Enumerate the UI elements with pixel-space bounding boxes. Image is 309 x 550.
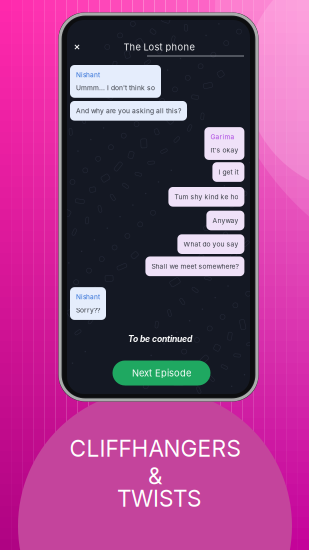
staticText: Nishant: [76, 71, 100, 79]
staticText: Garima: [210, 133, 234, 141]
staticText: CLIFFHANGERS: [69, 435, 240, 462]
staticText: Anyway: [212, 216, 238, 224]
staticText: I get it: [218, 168, 238, 176]
staticText: Ummm... I don't think so: [76, 84, 155, 92]
staticText: TWISTS: [117, 485, 201, 512]
staticText: And why are you asking all this?: [76, 107, 181, 115]
staticText: Shall we meet somewhere?: [151, 262, 238, 270]
button[interactable]: Close: [70, 40, 84, 54]
staticText: To be continued: [128, 334, 192, 344]
staticText: What do you say: [183, 240, 238, 248]
staticText: Next Episode: [132, 367, 191, 379]
staticText: Nishant: [76, 293, 100, 301]
staticText: &: [148, 462, 162, 490]
staticText: The Lost phone: [123, 41, 194, 53]
staticText: It's okay: [210, 146, 238, 154]
staticText: Sorry??: [76, 306, 100, 314]
staticText: Tum shy kind ke ho: [174, 193, 238, 201]
button[interactable]: Next Episode: [112, 360, 210, 385]
